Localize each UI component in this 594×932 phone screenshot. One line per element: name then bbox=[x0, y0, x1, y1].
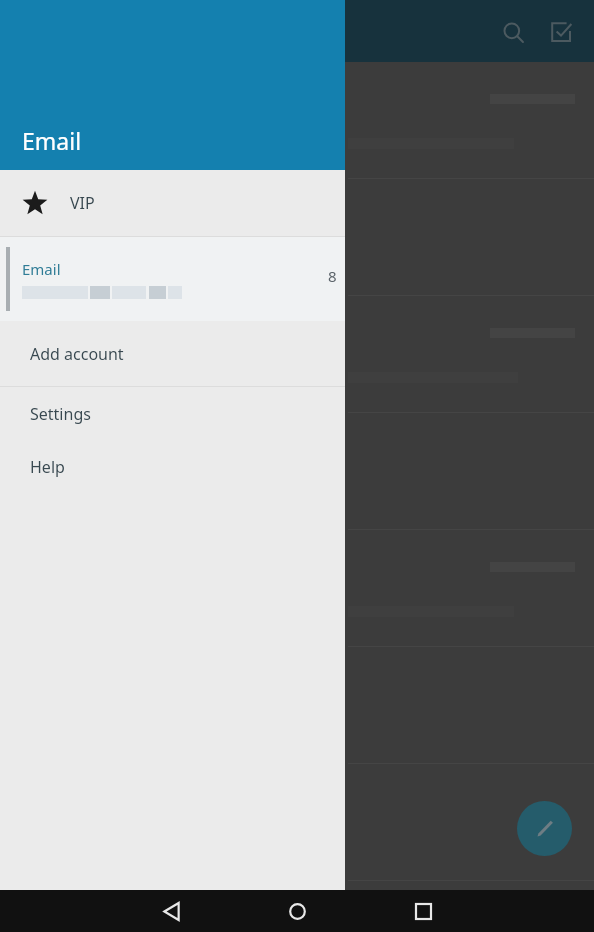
button[interactable]: VIP bbox=[0, 170, 345, 236]
button[interactable]: Settings bbox=[0, 387, 345, 440]
button[interactable] bbox=[0, 62, 594, 179]
button[interactable]: Help bbox=[0, 440, 345, 493]
button[interactable]: Search bbox=[492, 11, 534, 53]
staticText: Email bbox=[22, 259, 61, 279]
staticText: Add account bbox=[30, 343, 124, 365]
button[interactable]: Select messages bbox=[540, 11, 582, 53]
button[interactable] bbox=[0, 647, 594, 764]
button[interactable] bbox=[0, 296, 594, 413]
button[interactable] bbox=[0, 530, 594, 647]
staticText: Settings bbox=[30, 403, 91, 425]
button[interactable]: Home bbox=[274, 890, 320, 932]
button[interactable]: Compose bbox=[517, 801, 572, 856]
staticText: VIP bbox=[70, 192, 95, 214]
staticText: Email bbox=[22, 125, 82, 156]
button[interactable]: Email bbox=[0, 237, 345, 321]
button[interactable]: Add account bbox=[0, 321, 345, 386]
button[interactable]: Recent apps bbox=[400, 890, 446, 932]
button[interactable]: Back bbox=[148, 890, 194, 932]
button[interactable] bbox=[0, 764, 594, 881]
staticText: Help bbox=[30, 456, 65, 478]
button[interactable] bbox=[0, 413, 594, 530]
staticText: 8 bbox=[328, 266, 337, 286]
button[interactable] bbox=[0, 179, 594, 296]
